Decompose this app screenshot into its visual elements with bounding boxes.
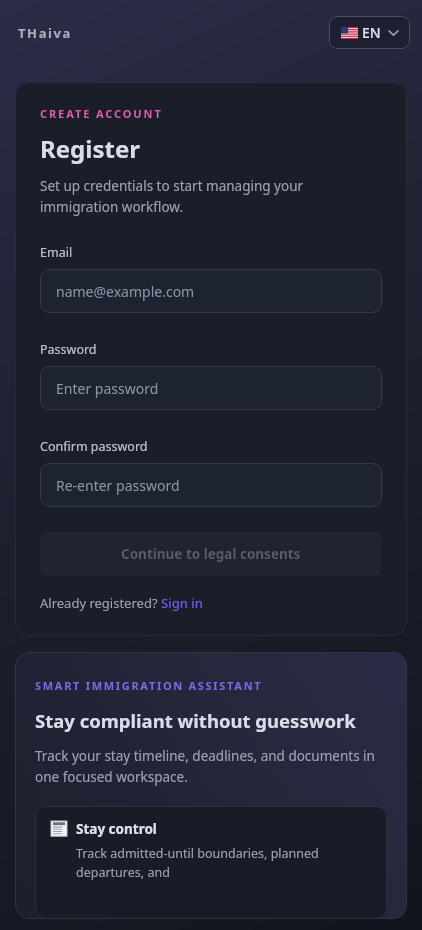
staticText: Already registered? bbox=[40, 594, 161, 612]
staticText: Track your stay timeline, deadlines, and… bbox=[35, 747, 387, 786]
staticText: Confirm password bbox=[40, 438, 148, 455]
staticText: Re-enter password bbox=[56, 476, 180, 495]
staticText: Email bbox=[40, 244, 73, 261]
staticText: name@example.com bbox=[56, 282, 195, 301]
staticText: CREATE ACCOUNT bbox=[40, 106, 163, 121]
button[interactable]: name@example.com bbox=[40, 269, 382, 313]
staticText: Stay control bbox=[76, 820, 157, 838]
button[interactable]: Enter password bbox=[40, 366, 382, 410]
button[interactable]: Re-enter password bbox=[40, 463, 382, 507]
staticText: Enter password bbox=[56, 379, 159, 398]
button[interactable]: Stay control bbox=[35, 806, 387, 919]
staticText: Set up credentials to start managing you… bbox=[40, 177, 382, 216]
staticText: Register bbox=[40, 132, 140, 165]
button[interactable]: Continue to legal consents bbox=[40, 532, 382, 576]
staticText: THaiva bbox=[18, 24, 72, 42]
button[interactable]: Select language, English bbox=[329, 16, 410, 49]
button[interactable]: Sign in bbox=[161, 594, 203, 612]
staticText: Continue to legal consents bbox=[121, 545, 301, 563]
staticText: Sign in bbox=[161, 594, 203, 612]
staticText: Stay compliant without guesswork bbox=[35, 708, 356, 733]
staticText: SMART IMMIGRATION ASSISTANT bbox=[35, 678, 263, 693]
button[interactable]: THaiva bbox=[16, 20, 74, 46]
staticText: Password bbox=[40, 341, 97, 358]
staticText: EN bbox=[362, 23, 381, 42]
staticText: Track admitted-until boundaries, planned… bbox=[76, 845, 371, 881]
